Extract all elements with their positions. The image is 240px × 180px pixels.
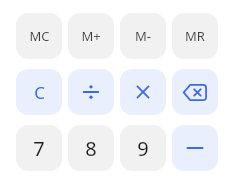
- button[interactable]: C: [16, 69, 62, 115]
- button[interactable]: MC: [16, 13, 62, 59]
- staticText: MR: [185, 27, 205, 45]
- staticText: MC: [29, 27, 50, 45]
- staticText: 9: [137, 135, 149, 162]
- staticText: 7: [33, 135, 45, 162]
- button[interactable]: Multiply: [120, 69, 166, 115]
- button[interactable]: MR: [172, 13, 218, 59]
- button[interactable]: Backspace: [172, 69, 218, 115]
- staticText: M+: [81, 27, 101, 45]
- button[interactable]: M-: [120, 13, 166, 59]
- button[interactable]: M+: [68, 13, 114, 59]
- staticText: 8: [85, 135, 97, 162]
- staticText: M-: [135, 27, 151, 45]
- button[interactable]: 7: [16, 125, 62, 171]
- button[interactable]: 8: [68, 125, 114, 171]
- button[interactable]: Divide: [68, 69, 114, 115]
- button[interactable]: 9: [120, 125, 166, 171]
- staticText: C: [34, 81, 45, 104]
- button[interactable]: Minus: [172, 125, 218, 171]
